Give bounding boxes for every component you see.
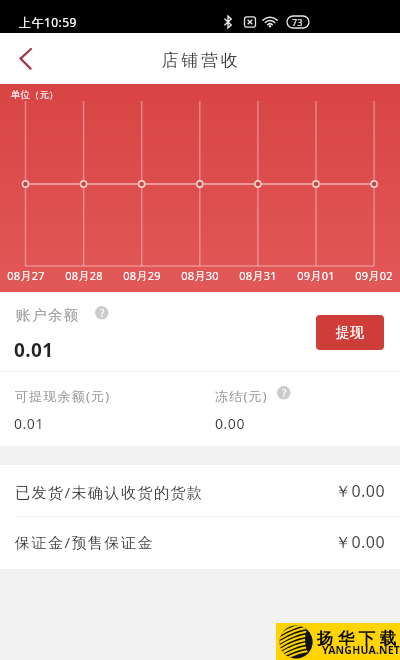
staticText: 保证金/预售保证金 <box>15 532 155 552</box>
staticText: 可提现余额(元) <box>15 387 111 405</box>
staticText: 08月31 <box>228 268 288 283</box>
button[interactable]: Back <box>4 41 40 77</box>
staticText: 已发货/未确认收货的货款 <box>15 482 204 502</box>
button[interactable]: Help <box>277 386 291 400</box>
staticText: ￥0.00 <box>335 480 385 502</box>
staticText: 扬华下载 <box>317 628 400 649</box>
button[interactable]: Help <box>95 306 109 320</box>
staticText: 09月01 <box>286 268 346 283</box>
staticText: 单位（元） <box>11 89 59 101</box>
staticText: 上午10:59 <box>19 14 77 30</box>
staticText: 账户余额 <box>15 306 79 324</box>
button[interactable]: 提现 <box>316 315 384 350</box>
staticText: 73 <box>292 16 303 28</box>
staticText: ? <box>100 306 105 320</box>
staticText: ￥0.00 <box>335 531 385 553</box>
staticText: 09月02 <box>344 268 400 283</box>
staticText: 08月29 <box>112 268 172 283</box>
staticText: 08月27 <box>0 268 56 283</box>
staticText: 08月30 <box>170 268 230 283</box>
staticText: 08月28 <box>54 268 114 283</box>
staticText: 店铺营收 <box>1 50 400 71</box>
staticText: ? <box>282 386 287 400</box>
staticText: 0.00 <box>215 414 245 433</box>
button[interactable]: 保证金/预售保证金 <box>0 517 400 569</box>
staticText: 冻结(元) <box>215 387 268 405</box>
staticText: 0.01 <box>14 414 44 433</box>
button[interactable]: 已发货/未确认收货的货款 <box>0 465 400 517</box>
staticText: 提现 <box>336 324 365 342</box>
staticText: 0.01 <box>14 337 54 363</box>
staticText: YANGHUA.NET <box>322 643 400 657</box>
